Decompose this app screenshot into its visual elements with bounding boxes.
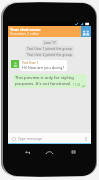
- button[interactable]: Home: [41, 148, 57, 156]
- staticText: Test User 1: [22, 61, 39, 65]
- staticText: Type message: [18, 136, 43, 141]
- staticText: Test User 2 joined the group: [27, 52, 72, 57]
- button[interactable]: Recents: [65, 148, 81, 156]
- button[interactable]: Members: [81, 26, 91, 37]
- button[interactable]: Type message: [18, 133, 83, 143]
- button[interactable]: Voice message: [83, 136, 88, 141]
- staticText: 5 members, 2 online: [10, 32, 39, 36]
- staticText: Your chat name: [10, 27, 41, 32]
- button[interactable]: Back: [19, 148, 35, 156]
- staticText: Hi! How are you doing?: [22, 65, 65, 70]
- staticText: Test User 1 joined the group: [27, 46, 72, 51]
- staticText: June 17: [44, 40, 56, 45]
- button[interactable]: Emoji: [11, 136, 16, 141]
- staticText: 11:34: [73, 83, 81, 87]
- staticText: This preview is only for styling purpose…: [15, 75, 74, 87]
